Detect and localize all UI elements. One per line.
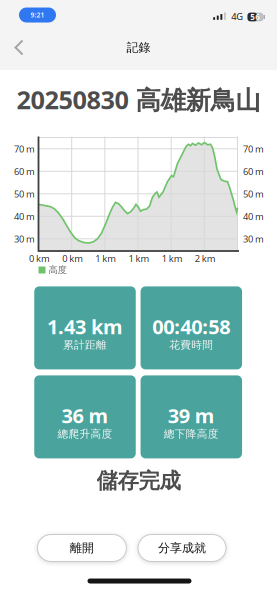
staticText: 70 m [14,143,35,155]
button[interactable]: Back [7,35,31,59]
staticText: 1 km [95,252,116,265]
staticText: 儲存完成 [96,468,180,494]
staticText: 分享成就 [158,541,206,555]
staticText: 1.43 km [47,313,123,340]
staticText: 20250830 高雄新鳥山 [16,83,260,116]
staticText: 36 m [61,402,108,429]
staticText: 60 m [243,165,264,177]
staticText: 30 m [243,233,264,245]
staticText: 2 km [195,252,216,265]
staticText: 39 m [168,402,215,429]
staticText: 總爬升高度 [57,427,112,440]
staticText: 1 km [162,252,183,265]
staticText: 0 km [29,252,50,265]
staticText: 累計距離 [63,338,107,351]
staticText: 高度 [48,264,66,276]
staticText: 總下降高度 [164,427,219,440]
staticText: 花費時間 [169,338,213,351]
staticText: 4G [231,10,243,22]
staticText: 30 m [14,233,35,245]
staticText: 70 m [243,143,264,155]
staticText: 40 m [243,210,264,222]
staticText: 9:21 [30,11,44,19]
staticText: 50 m [14,188,35,200]
button[interactable]: 離開 [37,534,126,561]
staticText: 離開 [70,541,94,555]
staticText: 56 [250,12,260,22]
button[interactable]: 分享成就 [138,534,226,561]
staticText: 1 km [128,252,149,265]
staticText: 50 m [243,188,264,200]
staticText: 00:40:58 [152,313,230,340]
staticText: 60 m [14,165,35,177]
staticText: 0 km [62,252,83,265]
staticText: 記錄 [126,40,150,55]
staticText: 40 m [14,210,35,222]
